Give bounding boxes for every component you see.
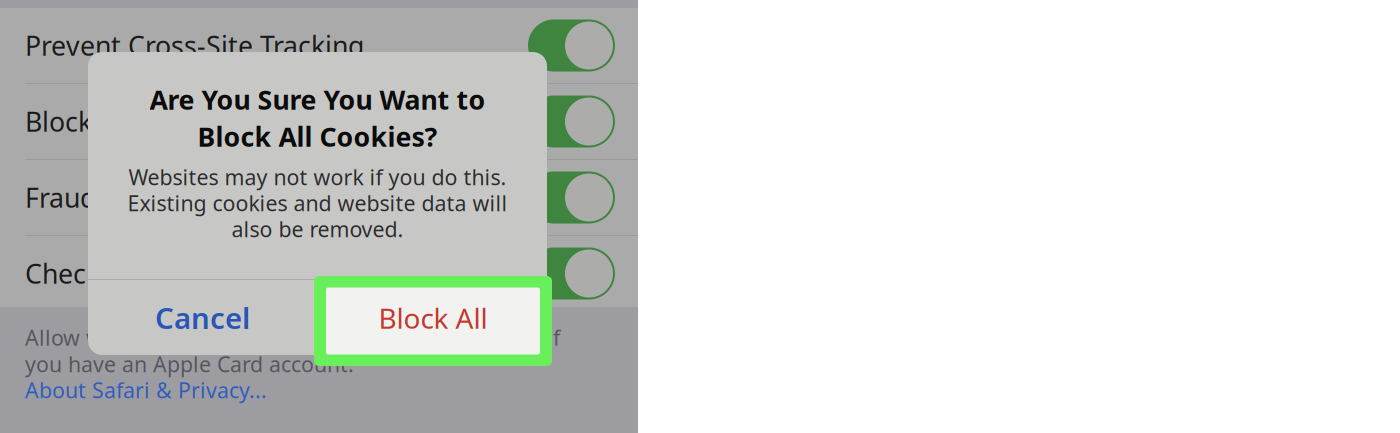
staticText: you have an Apple Card account.	[25, 350, 354, 378]
staticText: About Safari & Privacy...	[25, 376, 267, 404]
staticText: Block All Cookies?	[197, 119, 437, 154]
staticText: Block All	[378, 299, 487, 337]
staticText: Cancel	[155, 298, 250, 337]
button[interactable]: About Safari & Privacy...	[25, 377, 267, 403]
staticText: Are You Sure You Want to	[149, 82, 485, 117]
button[interactable]: Prevent Cross-Site Tracking	[0, 8, 638, 83]
button[interactable]: Cancel	[88, 280, 317, 355]
staticText: also be removed.	[231, 215, 403, 243]
staticText: Allow websites to check if Apple Pay is …	[25, 323, 560, 352]
staticText: Prevent Cross-Site Tracking	[25, 28, 364, 63]
staticText: Block All	[378, 299, 487, 336]
button[interactable]: Block All	[314, 276, 552, 366]
staticText: Websites may not work if you do this.	[128, 163, 506, 191]
button[interactable]: Check for Apple Pay	[0, 236, 638, 311]
staticText: Block All Cookies	[25, 104, 235, 139]
button[interactable]: Block All Cookies	[0, 84, 638, 159]
staticText: Existing cookies and website data will	[127, 189, 507, 217]
staticText: Fraudulent Website Warning	[25, 180, 379, 215]
button[interactable]: Block All	[318, 280, 547, 355]
staticText: Check for Apple Pay	[25, 256, 273, 291]
button[interactable]: Fraudulent Website Warning	[0, 160, 638, 235]
